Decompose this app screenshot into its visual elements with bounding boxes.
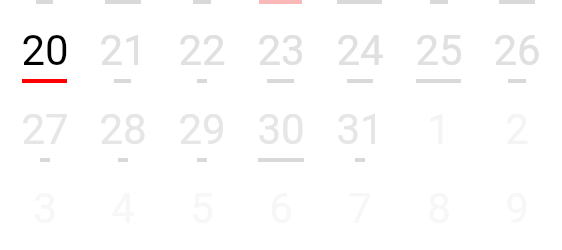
staticText: 22 xyxy=(178,26,226,75)
button[interactable]: 29 xyxy=(162,103,241,182)
button[interactable]: 23 xyxy=(241,24,320,103)
button[interactable]: 31 xyxy=(320,103,399,182)
button[interactable]: 26 xyxy=(477,24,556,103)
staticText: 24 xyxy=(336,26,384,75)
button[interactable]: Previous week, day 5 xyxy=(320,0,399,24)
staticText: 29 xyxy=(178,105,226,154)
staticText: 3 xyxy=(33,184,57,233)
button[interactable]: 20 xyxy=(5,24,84,103)
button[interactable]: 21 xyxy=(83,24,162,103)
staticText: 20 xyxy=(21,26,69,75)
staticText: 1 xyxy=(427,105,451,154)
button[interactable]: 27 xyxy=(5,103,84,182)
staticText: 25 xyxy=(415,26,463,75)
staticText: 27 xyxy=(21,105,69,154)
staticText: 28 xyxy=(99,105,147,154)
staticText: 26 xyxy=(493,26,541,75)
button[interactable]: Previous week, day 4 xyxy=(241,0,320,24)
staticText: 9 xyxy=(505,184,529,233)
staticText: 8 xyxy=(427,184,451,233)
button[interactable]: 30 xyxy=(241,103,320,182)
button[interactable]: 25 xyxy=(399,24,478,103)
staticText: 6 xyxy=(269,184,293,233)
button[interactable]: 24 xyxy=(320,24,399,103)
button[interactable]: 22 xyxy=(162,24,241,103)
button[interactable]: Previous week, day 2 xyxy=(83,0,162,24)
staticText: 2 xyxy=(505,105,529,154)
button[interactable]: Previous week, day 6 xyxy=(399,0,478,24)
button[interactable]: Previous week, day 7 xyxy=(477,0,556,24)
button[interactable]: Previous week, day 3 xyxy=(162,0,241,24)
staticText: 21 xyxy=(99,26,147,75)
staticText: 5 xyxy=(190,184,214,233)
staticText: 23 xyxy=(257,26,305,75)
staticText: 30 xyxy=(257,105,305,154)
staticText: 31 xyxy=(336,105,384,154)
button[interactable]: Previous week, day 1 xyxy=(5,0,84,24)
button[interactable]: 28 xyxy=(83,103,162,182)
staticText: 4 xyxy=(111,184,135,233)
